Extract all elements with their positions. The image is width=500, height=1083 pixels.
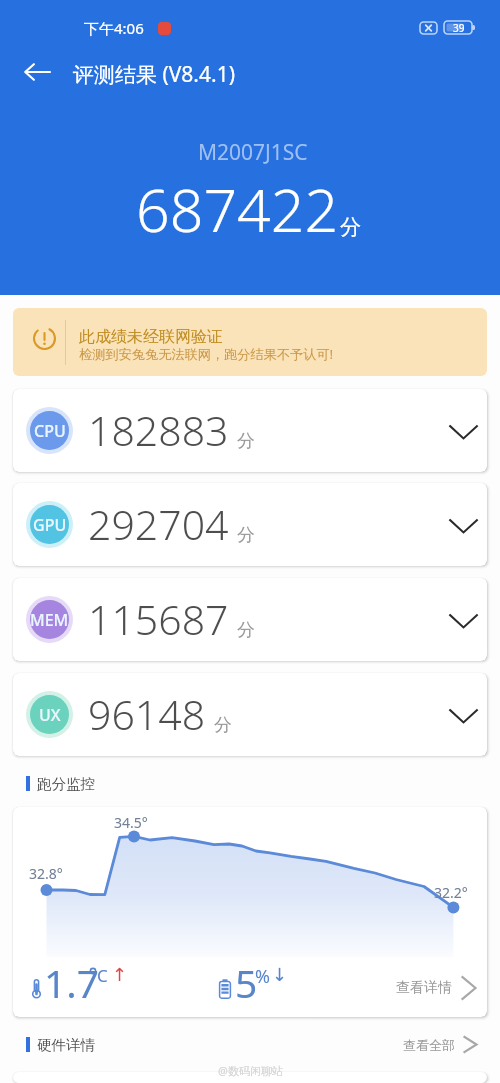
staticText: 分 xyxy=(237,524,255,547)
staticText: 687422 xyxy=(136,169,339,249)
button[interactable]: Back xyxy=(9,48,65,96)
staticText: 此成绩未经联网验证 xyxy=(79,327,223,347)
staticText: ↓ xyxy=(272,964,288,985)
staticText: 查看详情 xyxy=(396,979,452,997)
staticText: UX xyxy=(39,704,61,726)
staticText: 跑分监控 xyxy=(37,775,95,793)
staticText: 分 xyxy=(340,214,361,240)
staticText: MEM xyxy=(30,609,69,631)
button[interactable]: UX xyxy=(13,673,487,756)
staticText: 39 xyxy=(453,21,465,34)
staticText: 32.2° xyxy=(434,883,468,902)
staticText: 292704 xyxy=(88,496,229,552)
staticText: 下午4:06 xyxy=(84,18,144,38)
button[interactable]: CPU xyxy=(13,389,487,472)
staticText: M2007J1SC xyxy=(198,138,308,167)
staticText: % xyxy=(255,964,270,989)
staticText: 5 xyxy=(235,956,258,1009)
staticText: 评测结果 (V8.4.1) xyxy=(73,60,235,89)
staticText: 查看全部 xyxy=(403,1037,455,1053)
staticText: 115687 xyxy=(88,591,229,647)
staticText: 分 xyxy=(237,619,255,642)
staticText: 96148 xyxy=(88,686,206,742)
button[interactable]: MEM xyxy=(13,578,487,661)
staticText: 分 xyxy=(214,714,232,737)
staticText: GPU xyxy=(33,514,67,536)
staticText: @数码闲聊站 xyxy=(218,1063,283,1078)
staticText: C xyxy=(97,964,108,987)
staticText: 硬件详情 xyxy=(37,1036,95,1054)
staticText: 检测到安兔兔无法联网，跑分结果不予认可! xyxy=(79,345,334,363)
staticText: 182883 xyxy=(88,402,229,458)
button[interactable]: 查看全部 xyxy=(403,1035,478,1054)
staticText: CPU xyxy=(34,420,66,442)
staticText: 1.7 xyxy=(44,956,100,1009)
button[interactable]: 此成绩未经联网验证 xyxy=(13,308,487,376)
staticText: 34.5° xyxy=(114,813,148,832)
staticText: 分 xyxy=(237,430,255,453)
staticText: ↑ xyxy=(112,964,128,985)
button[interactable]: GPU xyxy=(13,483,487,566)
button[interactable]: 查看详情 xyxy=(396,975,477,1001)
staticText: 32.8° xyxy=(29,864,63,883)
